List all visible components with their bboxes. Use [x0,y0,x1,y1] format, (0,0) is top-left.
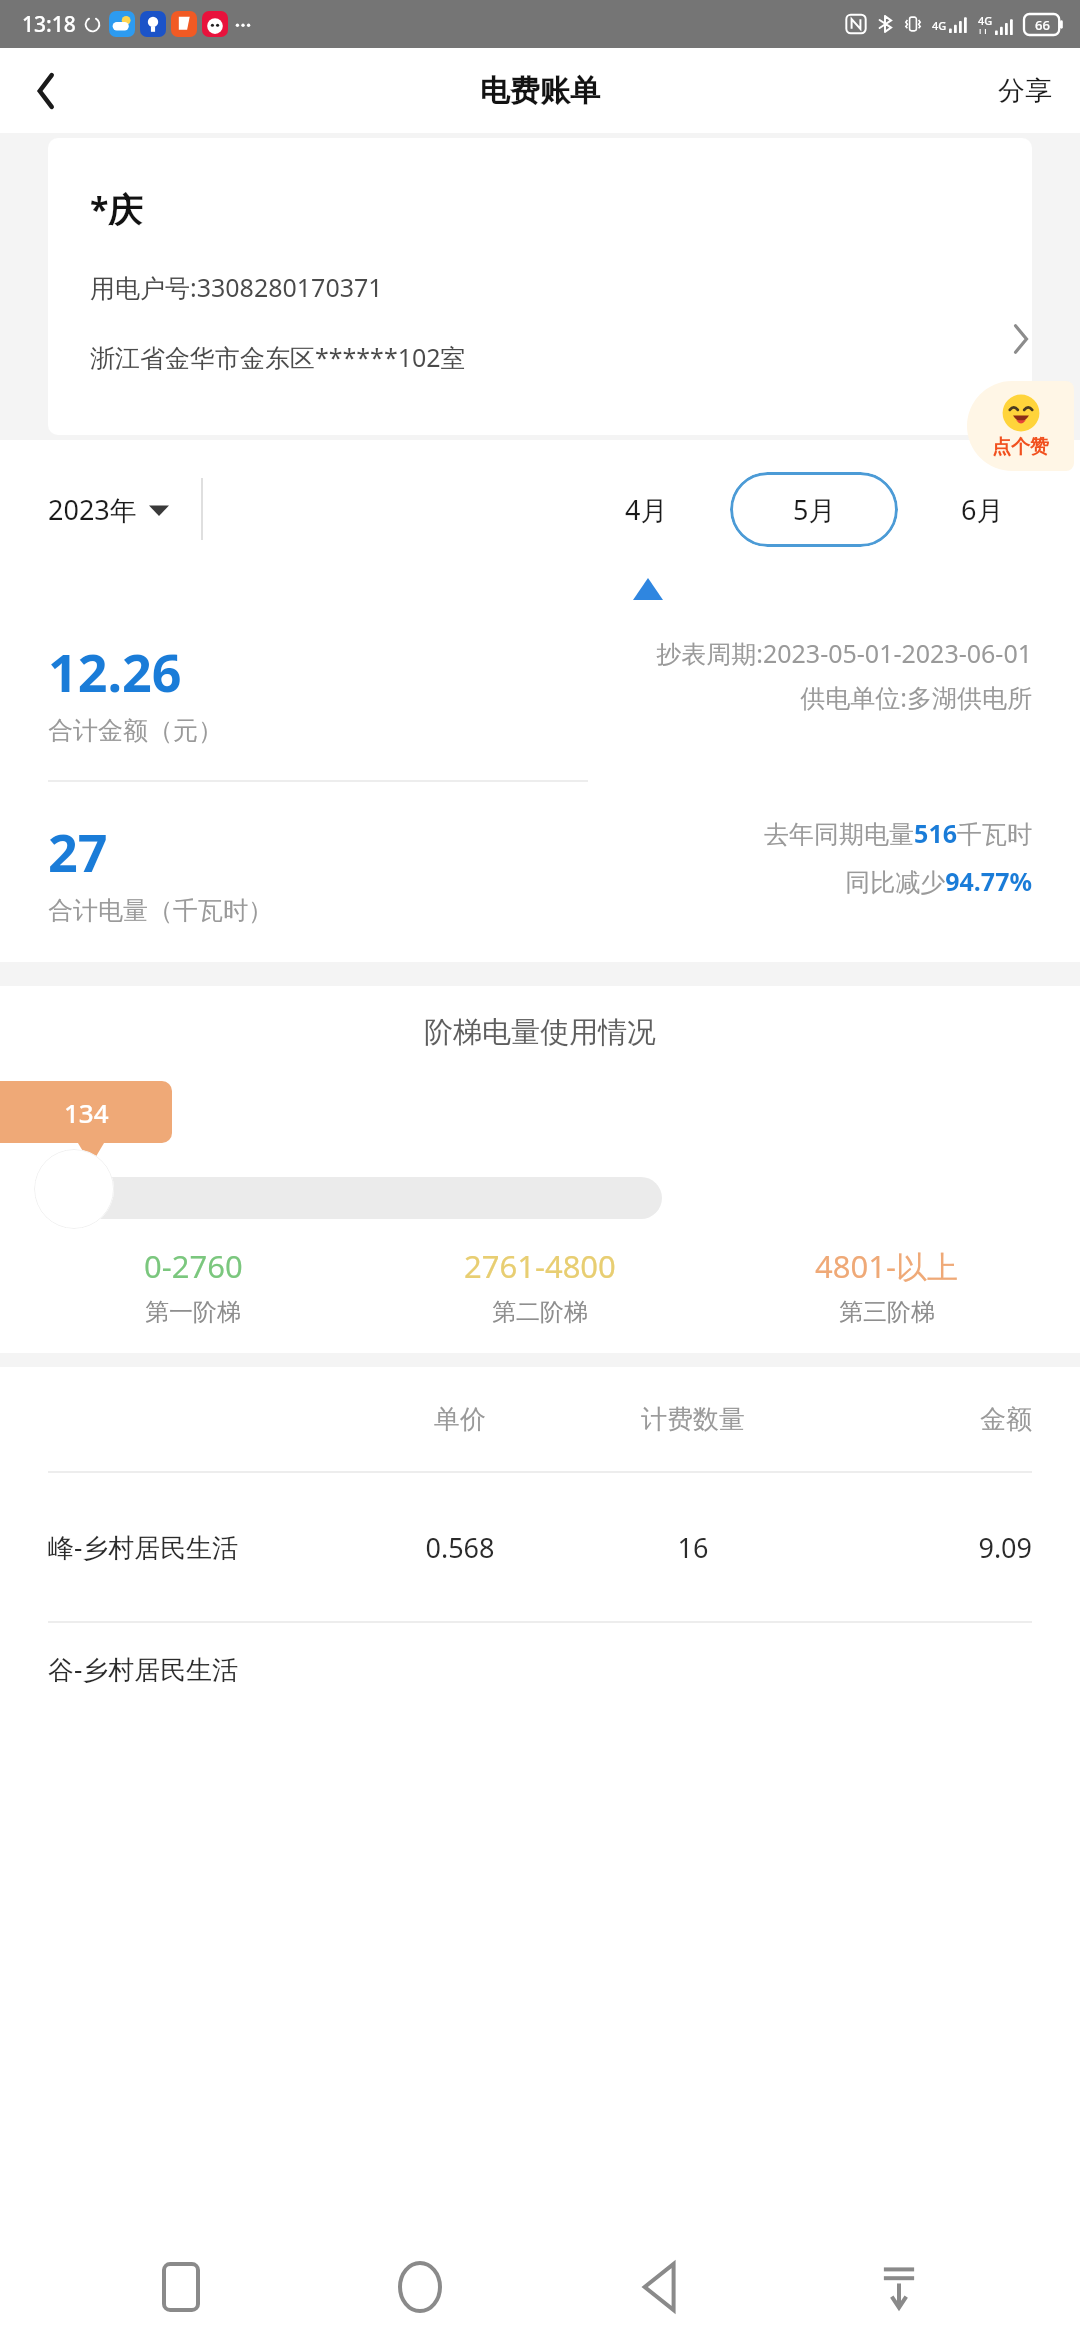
staticText: 谷-乡村居民生活 [48,1651,334,1683]
button[interactable]: 点个赞 [967,381,1074,471]
button[interactable]: Recents [122,2234,240,2340]
staticText: 2761-4800 [464,1245,616,1287]
staticText: 计费数量 [566,1403,820,1436]
staticText: 抄表周期:2023-05-01-2023-06-01 [467,636,1032,670]
staticText: 9.09 [820,1529,1032,1566]
button[interactable]: Back [601,2234,719,2340]
staticText: 13:18 [22,10,76,39]
staticText: 第二阶梯 [492,1297,588,1327]
button[interactable]: 峰-乡村居民生活 [48,1473,1032,1621]
button[interactable]: 5月 [730,472,898,547]
staticText: 阶梯电量使用情况 [0,1014,1080,1051]
staticText: 第三阶梯 [839,1297,935,1327]
staticText: 金额 [820,1403,1032,1436]
staticText: 66 [1035,16,1050,34]
staticText: 5月 [793,491,836,528]
button[interactable]: 0-2760 [20,1245,366,1327]
staticText: 4G [978,13,993,28]
button[interactable]: 4月 [562,478,730,540]
staticText: 分享 [998,74,1052,108]
button[interactable]: 4801-以上 [713,1245,1060,1327]
staticText: 16 [566,1529,820,1566]
button[interactable]: 用电量滑块 [34,1149,114,1229]
staticText: 电费账单 [480,72,600,110]
button[interactable]: Hide keyboard [840,2234,958,2340]
staticText: 单价 [354,1403,566,1436]
staticText: 12.26 [48,636,182,707]
staticText: 用电户号:3308280170371 [90,270,383,304]
staticText: 0-2760 [144,1245,243,1287]
staticText: 134 [64,1095,109,1130]
staticText: 同比减少94.77% [467,864,1032,898]
button[interactable]: *庆 [48,138,1032,435]
staticText: 合计电量（千瓦时） [48,895,273,926]
staticText: 0.568 [354,1529,566,1566]
button[interactable]: 分享 [970,48,1080,133]
staticText: 合计金额（元） [48,715,223,746]
button[interactable]: 2761-4800 [366,1245,713,1327]
button[interactable]: Back [0,48,92,133]
staticText: 点个赞 [992,435,1049,459]
staticText: 2023年 [48,491,137,528]
staticText: 6月 [961,491,1004,528]
button[interactable]: 2023年 [48,491,169,528]
button[interactable]: 谷-乡村居民生活 [48,1623,1032,1683]
staticText: 峰-乡村居民生活 [48,1529,334,1565]
staticText: 供电单位:多湖供电所 [800,680,1032,714]
button[interactable]: Home [361,2234,479,2340]
staticText: 4801-以上 [815,1245,958,1287]
staticText: 去年同期电量516千瓦时 [467,816,1032,850]
staticText: *庆 [90,186,143,232]
staticText: 第一阶梯 [145,1297,241,1327]
staticText: 4G [932,18,947,33]
staticText: 27 [48,816,108,887]
staticText: 浙江省金华市金东区******102室 [90,340,466,374]
button[interactable]: 6月 [898,478,1066,540]
staticText: 4月 [625,491,668,528]
